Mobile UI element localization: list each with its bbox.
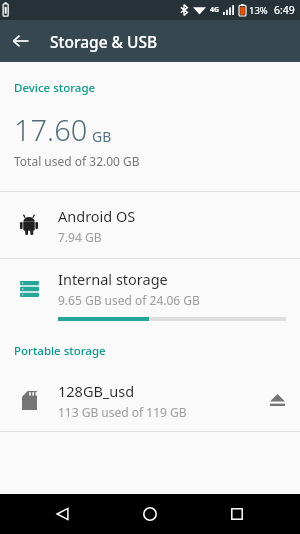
button[interactable]: Navigate up [0, 20, 42, 62]
staticText: Device storage [14, 80, 96, 96]
staticText: GB [92, 127, 112, 146]
staticText: Android OS [58, 206, 136, 226]
staticText: Internal storage [58, 269, 168, 289]
staticText: 7.94 GB [58, 229, 102, 245]
button[interactable]: Back [39, 494, 87, 534]
staticText: 9.65 GB used of 24.06 GB [58, 292, 200, 308]
staticText: 17.60 [14, 110, 88, 149]
button[interactable]: Recent apps [213, 494, 261, 534]
staticText: Portable storage [14, 343, 106, 359]
button[interactable]: Eject [254, 377, 300, 423]
button[interactable]: Internal storage [0, 259, 300, 329]
button[interactable]: 128GB_usd [0, 369, 300, 431]
staticText: 4G [210, 5, 220, 15]
staticText: Storage & USB [50, 31, 158, 52]
staticText: 6:49 [274, 3, 295, 17]
staticText: Total used of 32.00 GB [14, 153, 140, 169]
button[interactable]: Home [126, 494, 174, 534]
staticText: 128GB_usd [58, 381, 135, 401]
staticText: 13% [249, 4, 268, 17]
staticText: 113 GB used of 119 GB [58, 404, 187, 420]
button[interactable]: Android OS [0, 192, 300, 258]
